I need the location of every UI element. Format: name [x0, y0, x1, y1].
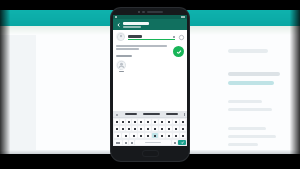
button[interactable]: Key [132, 126, 137, 131]
button[interactable]: Key [180, 119, 186, 124]
button[interactable]: Key [152, 119, 158, 124]
button[interactable] [143, 113, 160, 115]
button[interactable]: Key [129, 140, 134, 145]
button[interactable]: Key [114, 133, 121, 138]
button[interactable]: Key [152, 126, 158, 131]
button[interactable]: Key [114, 126, 119, 131]
button[interactable]: Key [180, 133, 186, 138]
button[interactable]: Key [145, 133, 151, 138]
button[interactable]: ?123 [114, 140, 122, 145]
button[interactable]: Key [159, 126, 165, 131]
button[interactable]: Key [126, 126, 131, 131]
button[interactable] [125, 113, 137, 115]
button[interactable] [128, 33, 175, 39]
button[interactable]: Key [130, 133, 137, 138]
button[interactable]: Group photo [116, 32, 125, 41]
button[interactable]: Key [122, 133, 129, 138]
button[interactable]: Key [120, 126, 125, 131]
button[interactable]: Key [138, 133, 144, 138]
button[interactable]: Back [115, 21, 122, 28]
button[interactable]: Key [166, 133, 172, 138]
button[interactable]: Key [145, 119, 151, 124]
button[interactable]: Key [138, 119, 144, 124]
button[interactable]: Key [123, 140, 128, 145]
button[interactable]: Voice input [115, 113, 118, 116]
button[interactable]: Key [166, 119, 172, 124]
button[interactable]: Create group [173, 46, 184, 57]
button[interactable]: Emoji [178, 34, 184, 40]
button[interactable]: Key [152, 133, 158, 138]
button[interactable]: Key [180, 126, 186, 131]
button[interactable]: Participant [116, 60, 126, 70]
button[interactable]: Key [132, 119, 137, 124]
button[interactable]: Key [159, 133, 165, 138]
button[interactable]: Key [166, 126, 172, 131]
button[interactable]: Key [145, 126, 151, 131]
button[interactable]: Space [135, 140, 171, 145]
button[interactable] [166, 113, 178, 115]
button[interactable]: Enter [178, 140, 186, 145]
button[interactable]: Key [120, 119, 125, 124]
button[interactable]: Key [172, 140, 177, 145]
button[interactable]: Key [173, 119, 179, 124]
button[interactable]: Key [138, 126, 144, 131]
button[interactable]: Key [114, 119, 119, 124]
button[interactable]: Key [173, 126, 179, 131]
button[interactable]: Key [159, 119, 165, 124]
button[interactable]: Key [173, 133, 179, 138]
button[interactable]: Key [126, 119, 131, 124]
